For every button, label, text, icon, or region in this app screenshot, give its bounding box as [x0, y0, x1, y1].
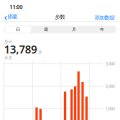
staticText: 1,000 — [105, 106, 114, 111]
staticText: 添加数据 — [94, 14, 114, 21]
staticText: 3,000 — [105, 61, 114, 66]
staticText: 总计 — [4, 39, 12, 44]
staticText: 2,000 — [105, 83, 114, 89]
button[interactable]: 年 — [88, 26, 116, 33]
staticText: 11:00 — [9, 3, 22, 10]
staticText: 年 — [100, 27, 104, 32]
staticText: 週 — [44, 27, 48, 32]
staticText: 步数 — [55, 14, 65, 20]
staticText: 步 — [38, 50, 42, 55]
staticText: 今天 — [4, 55, 12, 60]
button[interactable]: 日 — [4, 26, 32, 33]
button[interactable]: ‹ — [4, 13, 18, 21]
button[interactable]: 添加数据 — [94, 14, 114, 22]
staticText: 摘要 — [8, 13, 18, 20]
staticText: ‹ — [4, 11, 7, 23]
button[interactable]: 週 — [32, 26, 60, 33]
staticText: 13,789 — [4, 42, 37, 56]
button[interactable]: 月 — [60, 26, 88, 33]
staticText: 日 — [16, 27, 20, 32]
staticText: 月 — [72, 27, 76, 32]
